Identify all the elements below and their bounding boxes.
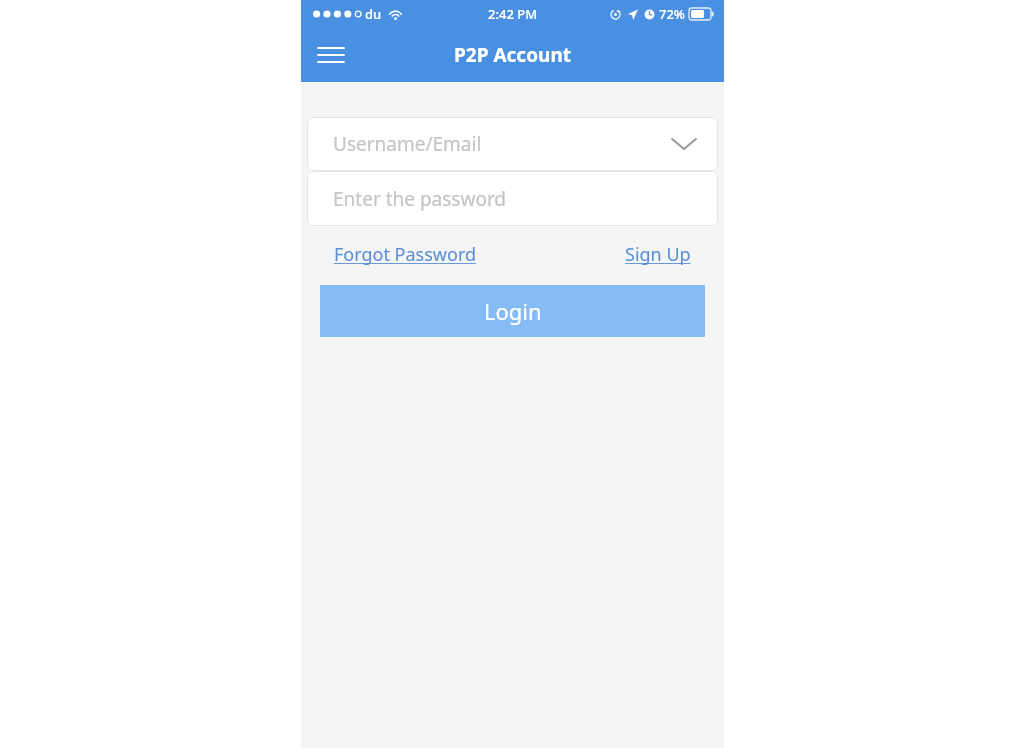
staticText: Login bbox=[484, 296, 542, 326]
button[interactable]: Forgot Password bbox=[334, 242, 477, 267]
button[interactable]: Login bbox=[320, 285, 705, 337]
staticText: Enter the password bbox=[333, 186, 507, 212]
staticText: Sign Up bbox=[625, 242, 691, 267]
staticText: P2P Account bbox=[454, 42, 571, 68]
staticText: 72% bbox=[659, 5, 685, 23]
staticText: du bbox=[365, 5, 382, 23]
button[interactable]: Menu bbox=[309, 33, 353, 77]
button[interactable]: Username/Email bbox=[307, 117, 718, 171]
staticText: 2:42 PM bbox=[488, 5, 538, 23]
staticText: Username/Email bbox=[333, 131, 670, 157]
staticText: Forgot Password bbox=[334, 242, 477, 267]
button[interactable]: Sign Up bbox=[625, 242, 691, 267]
button[interactable]: Enter the password bbox=[307, 171, 718, 226]
